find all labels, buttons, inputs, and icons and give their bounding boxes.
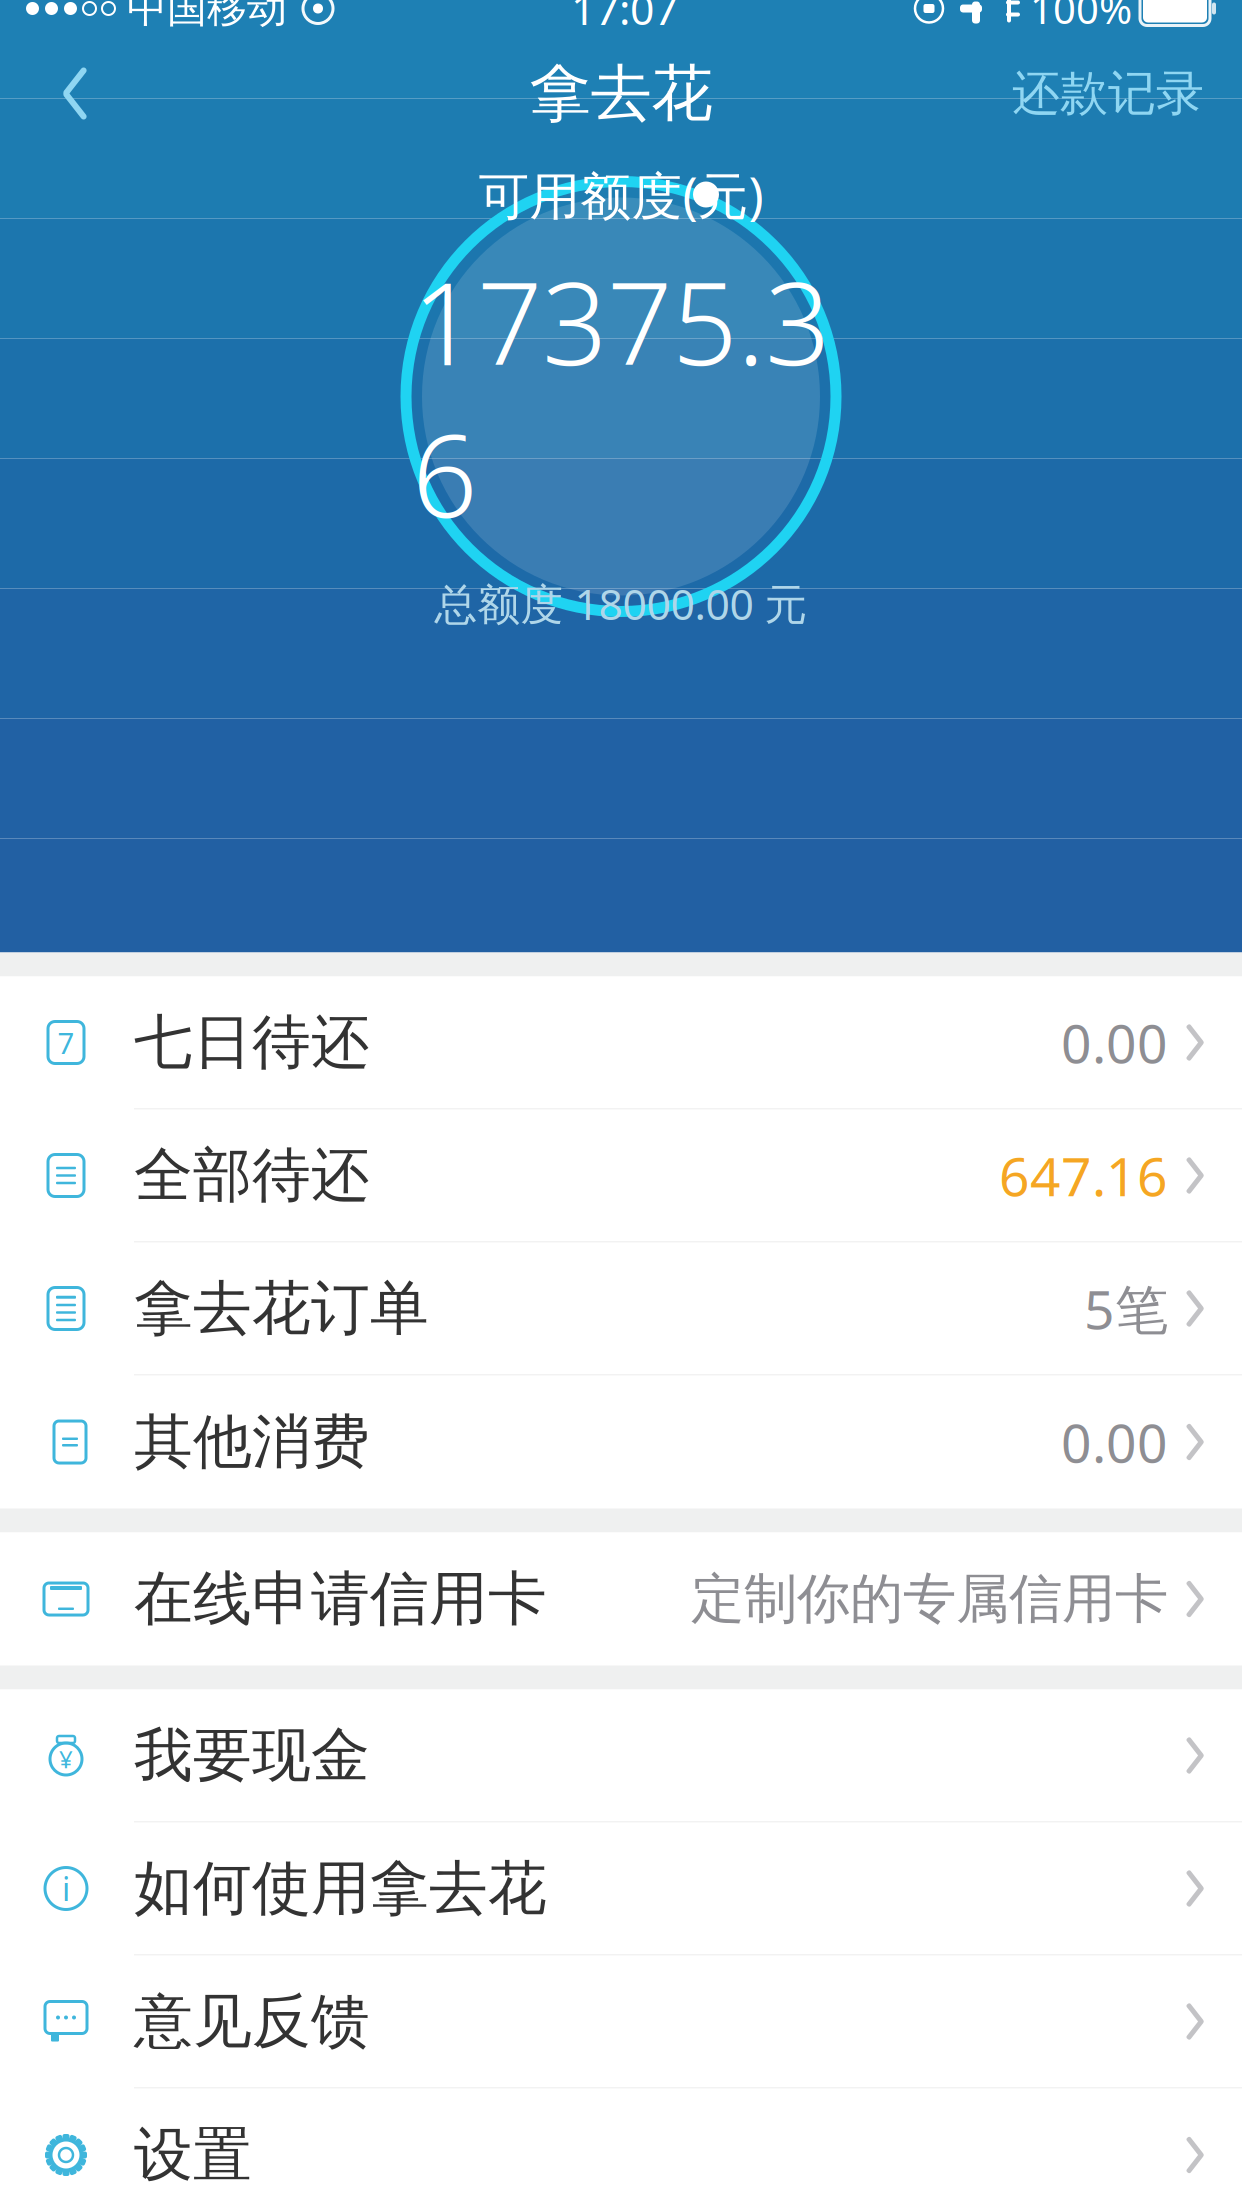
staticText: 我要现金 bbox=[134, 1719, 370, 1792]
button[interactable]: 拿去花订单 bbox=[0, 1242, 1242, 1375]
staticText: 其他消费 bbox=[134, 1406, 370, 1478]
staticText: 七日待还 bbox=[134, 1006, 370, 1079]
staticText: 总额度 18000.00 元 bbox=[434, 575, 807, 632]
button[interactable]: 其他消费 bbox=[0, 1375, 1242, 1508]
button[interactable]: i bbox=[0, 1822, 1242, 1955]
staticText: 0.00 bbox=[1061, 1007, 1168, 1078]
button[interactable]: ¥ bbox=[0, 1689, 1242, 1822]
staticText: 17375.36 bbox=[412, 244, 830, 549]
staticText: 17:07 bbox=[571, 0, 678, 37]
staticText: 拿去花订单 bbox=[134, 1272, 429, 1345]
staticText: 7 bbox=[57, 1023, 74, 1062]
staticText: 还款记录 bbox=[1012, 64, 1204, 123]
button[interactable]: 返回 bbox=[30, 48, 120, 138]
button[interactable]: 意见反馈 bbox=[0, 1955, 1242, 2088]
staticText: 拿去花 bbox=[529, 56, 712, 131]
staticText: 全部待还 bbox=[134, 1139, 370, 1212]
staticText: 定制你的专属信用卡 bbox=[691, 1566, 1168, 1632]
button[interactable]: 还款记录 bbox=[1004, 48, 1212, 138]
staticText: 在线申请信用卡 bbox=[134, 1563, 547, 1635]
staticText: 647.16 bbox=[999, 1140, 1168, 1211]
staticText: 5笔 bbox=[1084, 1273, 1168, 1344]
staticText: 可用额度(元) bbox=[478, 161, 763, 229]
staticText: 100% bbox=[1030, 0, 1132, 35]
button[interactable]: 设置 bbox=[0, 2088, 1242, 2208]
staticText: ¥ bbox=[59, 1743, 73, 1775]
staticText: i bbox=[62, 1867, 70, 1910]
staticText: 意见反馈 bbox=[134, 1985, 370, 2058]
staticText: 中国移动 bbox=[127, 0, 287, 33]
button[interactable]: 7 bbox=[0, 976, 1242, 1109]
button[interactable]: 全部待还 bbox=[0, 1109, 1242, 1242]
staticText: 如何使用拿去花 bbox=[134, 1852, 547, 1925]
button[interactable]: 在线申请信用卡 bbox=[0, 1532, 1242, 1665]
staticText: 0.00 bbox=[1061, 1407, 1168, 1477]
staticText: 设置 bbox=[134, 2119, 252, 2191]
